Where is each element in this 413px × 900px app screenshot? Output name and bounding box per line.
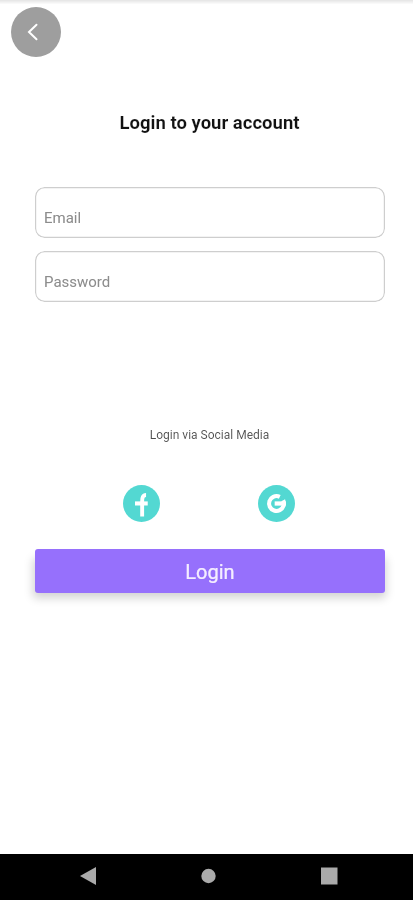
button[interactable]: Back: [11, 7, 61, 57]
button[interactable]: Email: [35, 187, 385, 238]
button[interactable]: Login with Google: [258, 485, 295, 522]
staticText: Login: [185, 560, 235, 583]
staticText: Login via Social Media: [3, 428, 413, 442]
staticText: Email: [44, 209, 82, 227]
button[interactable]: Password: [35, 251, 385, 302]
button[interactable]: Login with Facebook: [123, 485, 160, 522]
staticText: Password: [44, 273, 111, 291]
button[interactable]: Login: [35, 549, 385, 593]
staticText: Login to your account: [3, 112, 413, 134]
